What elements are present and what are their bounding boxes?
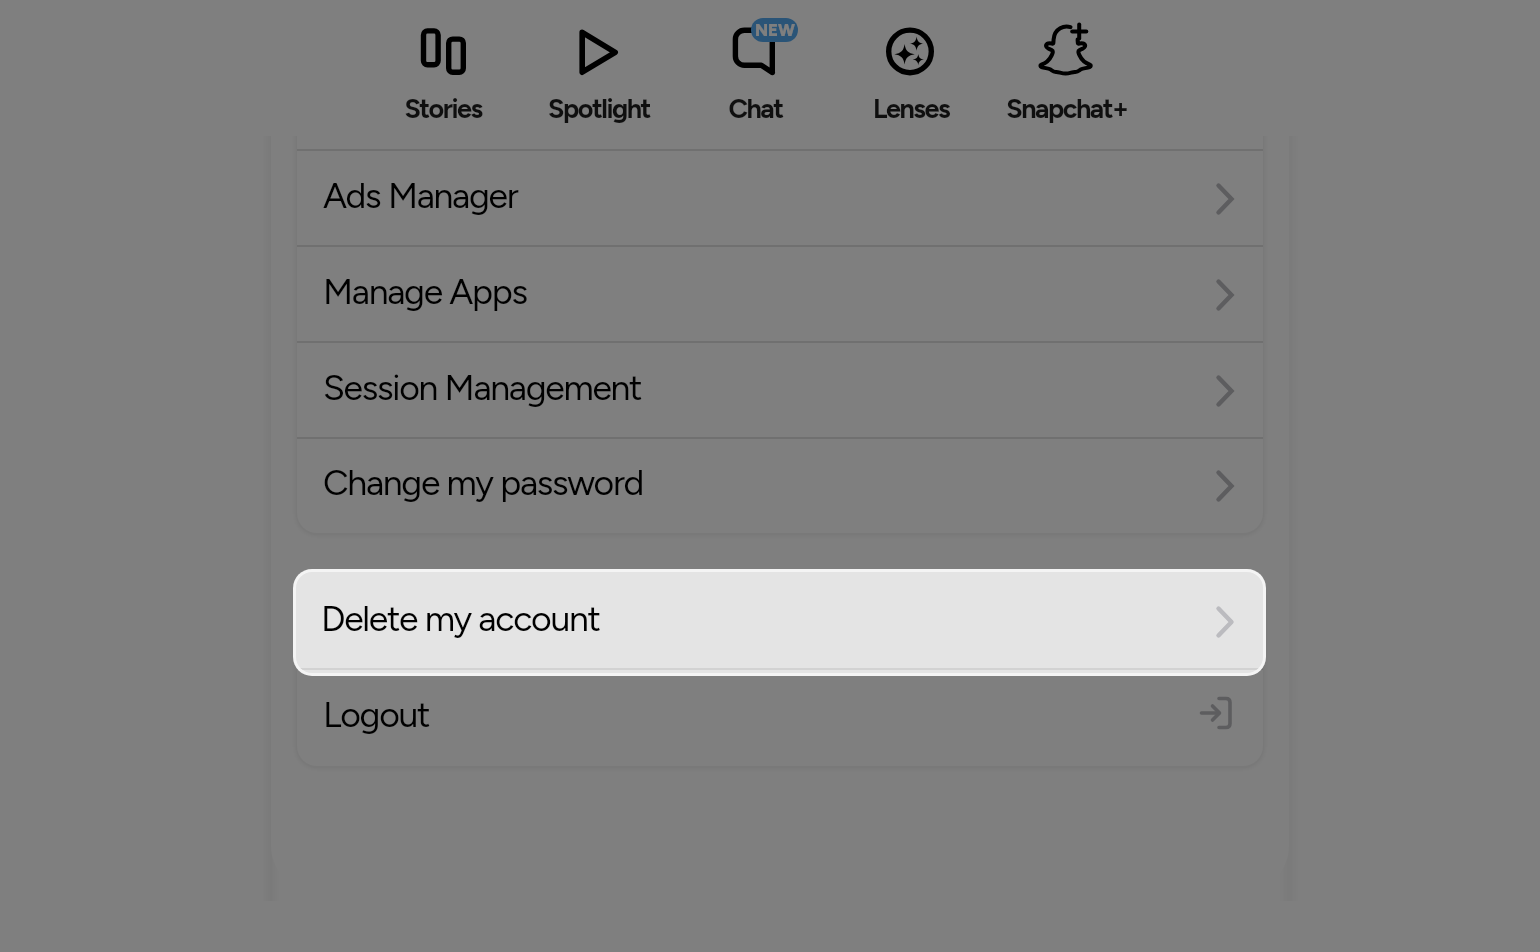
button[interactable]: Privacy Settings bbox=[297, 55, 1263, 151]
button[interactable]: Delete my account bbox=[297, 574, 1263, 670]
staticText: Lenses bbox=[873, 92, 949, 124]
button[interactable]: Spotlight bbox=[521, 0, 677, 136]
button[interactable]: Lenses bbox=[833, 0, 989, 136]
staticText: Logout bbox=[323, 693, 430, 736]
other: Chat bbox=[725, 24, 785, 80]
other: Logout bbox=[1200, 696, 1234, 730]
other: Spotlight bbox=[569, 24, 629, 80]
button[interactable]: Session Management bbox=[297, 343, 1263, 439]
staticText: Snapchat+ bbox=[1006, 92, 1128, 124]
staticText: Privacy Settings bbox=[323, 78, 560, 121]
button[interactable]: Stories bbox=[365, 0, 521, 136]
other: Snapchat Plus bbox=[1037, 24, 1097, 80]
staticText: Delete my account bbox=[323, 597, 602, 640]
staticText: Manage Apps bbox=[323, 270, 527, 313]
button[interactable]: Chat bbox=[677, 0, 833, 136]
button[interactable]: Delete my account bbox=[296, 572, 1263, 673]
other: Lenses bbox=[881, 24, 941, 80]
button[interactable]: Ads Manager bbox=[297, 151, 1263, 247]
staticText: Change my password bbox=[323, 461, 644, 504]
staticText: Delete my account bbox=[321, 597, 600, 640]
staticText: Spotlight bbox=[548, 92, 650, 124]
button[interactable]: Change my password bbox=[297, 439, 1263, 533]
staticText: Session Management bbox=[323, 366, 642, 409]
button[interactable]: Logout bbox=[297, 670, 1263, 766]
staticText: Chat bbox=[728, 92, 783, 124]
staticText: Ads Manager bbox=[323, 174, 518, 217]
button[interactable]: Snapchat Plus bbox=[989, 0, 1145, 136]
staticText: NEW bbox=[755, 20, 795, 40]
staticText: Stories bbox=[404, 92, 482, 124]
button[interactable]: Manage Apps bbox=[297, 247, 1263, 343]
other: Stories bbox=[413, 24, 473, 80]
